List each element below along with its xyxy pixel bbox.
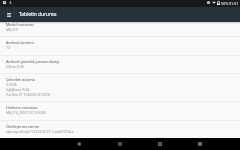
staticText: Model numarası <box>6 22 34 27</box>
staticText: luj@jfxcrw15 #2 <box>6 87 30 92</box>
button[interactable]: Derleme numarası <box>0 101 240 120</box>
staticText: MA_S10 <box>6 27 18 32</box>
staticText: 50% <box>221 1 229 6</box>
staticText: Özelleştirme sürüm <box>6 124 40 129</box>
staticText: Android sürümü <box>6 40 34 45</box>
staticText: alps-mp-n0.mp1-V3.103-V2.13.1_mtk8127.lb… <box>6 129 74 134</box>
staticText: Çekirdek sürümü <box>6 77 36 82</box>
button[interactable]: Çekirdek sürümü <box>0 73 240 101</box>
staticText: 5 Ekim 2016 <box>6 64 24 69</box>
button[interactable]: Recent apps <box>154 138 166 150</box>
button[interactable]: Android güvenlik yaması düzeyi <box>0 55 240 74</box>
button[interactable]: Open navigation menu <box>3 9 15 21</box>
button[interactable]: Özelleştirme sürüm <box>0 120 240 139</box>
staticText: MA_S10_20181127_V2.0.05 <box>6 110 46 115</box>
staticText: 7.0 <box>6 45 11 50</box>
button[interactable]: Back <box>73 138 85 150</box>
staticText: Android güvenlik yaması düzeyi <box>6 59 60 64</box>
button[interactable]: Android sürümü <box>0 36 240 55</box>
staticText: Derleme numarası <box>6 105 38 110</box>
staticText: 3.18.35 <box>6 82 17 87</box>
staticText: Tabletin durumu <box>19 11 57 18</box>
button[interactable]: Model numarası <box>0 18 240 37</box>
staticText: Tue Nov 27 11:28:28 CST 2018 <box>6 92 50 97</box>
button[interactable]: Screenshot <box>194 138 206 150</box>
staticText: 01:51 <box>229 1 239 6</box>
button[interactable]: Home <box>114 138 126 150</box>
